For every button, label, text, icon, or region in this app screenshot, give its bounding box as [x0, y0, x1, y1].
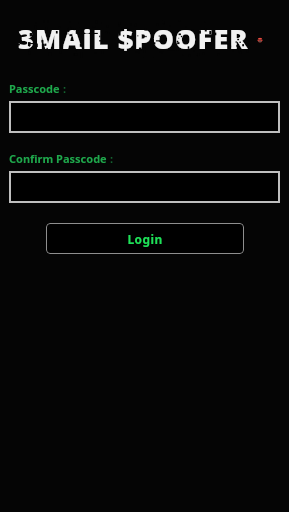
staticText: Login	[127, 231, 163, 247]
button[interactable]: Login	[46, 223, 244, 254]
button[interactable]	[9, 171, 280, 203]
button[interactable]	[9, 101, 280, 133]
staticText: :	[110, 151, 114, 166]
staticText: 3MAiL $POOFER	[18, 20, 249, 57]
other: App logo	[257, 23, 263, 54]
staticText: :	[63, 81, 67, 96]
staticText: Passcode	[9, 81, 60, 96]
staticText: Confirm Passcode	[9, 151, 107, 166]
